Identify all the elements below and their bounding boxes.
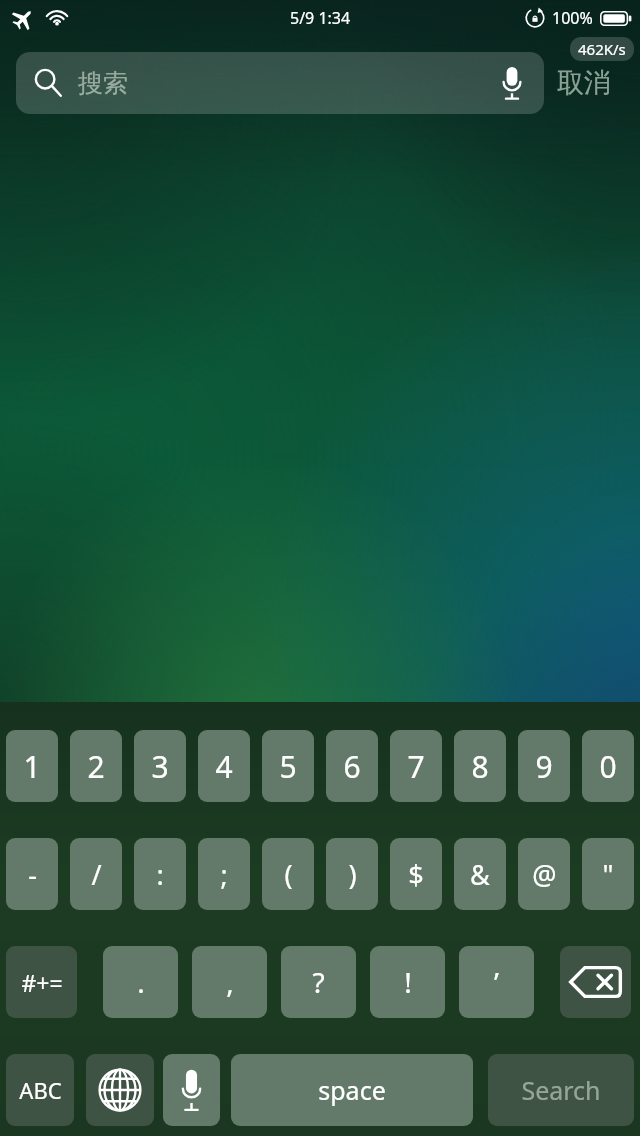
button[interactable]: space (231, 1054, 473, 1126)
staticText: 1 (23, 746, 41, 787)
staticText: ( (284, 856, 293, 893)
staticText: ! (404, 963, 412, 1001)
button[interactable]: 5 (262, 730, 314, 802)
staticText: : (156, 856, 164, 893)
button[interactable]: Voice search (490, 61, 534, 105)
staticText: @ (532, 856, 557, 893)
staticText: 9 (535, 746, 553, 787)
button[interactable]: ABC (6, 1054, 74, 1126)
staticText: ) (348, 856, 357, 893)
button[interactable]: ’ (459, 946, 534, 1018)
button[interactable]: ? (281, 946, 356, 1018)
staticText: " (602, 856, 614, 893)
button[interactable]: : (134, 838, 186, 910)
staticText: 8 (471, 746, 489, 787)
staticText: ’ (494, 963, 499, 1001)
staticText: ABC (19, 1075, 62, 1105)
button[interactable]: 1 (6, 730, 58, 802)
staticText: 5/9 1:34 (290, 7, 351, 29)
button[interactable]: , (192, 946, 267, 1018)
staticText: 取消 (557, 66, 611, 100)
staticText: 7 (407, 746, 425, 787)
button[interactable]: " (582, 838, 634, 910)
staticText: ; (220, 856, 228, 893)
button[interactable]: 搜索 (16, 52, 544, 114)
staticText: 0 (599, 746, 617, 787)
button[interactable]: $ (390, 838, 442, 910)
button[interactable]: 4 (198, 730, 250, 802)
staticText: space (318, 1073, 386, 1107)
staticText: ? (312, 963, 325, 1001)
staticText: $ (408, 856, 424, 893)
button[interactable]: - (6, 838, 58, 910)
staticText: Search (521, 1073, 601, 1107)
staticText: 100% (552, 7, 593, 29)
button[interactable]: ) (326, 838, 378, 910)
button[interactable]: Search (488, 1054, 634, 1126)
button[interactable]: ( (262, 838, 314, 910)
button[interactable]: 2 (70, 730, 122, 802)
staticText: & (470, 856, 490, 893)
staticText: 搜索 (78, 68, 128, 99)
staticText: 462K/s (578, 39, 626, 59)
staticText: , (226, 963, 234, 1001)
staticText: 4 (215, 746, 233, 787)
staticText: . (137, 963, 145, 1001)
staticText: / (91, 856, 102, 893)
button[interactable]: Delete (560, 946, 631, 1018)
staticText: 6 (343, 746, 361, 787)
button[interactable]: 0 (582, 730, 634, 802)
staticText: - (28, 856, 37, 893)
staticText: 5 (279, 746, 297, 787)
button[interactable]: . (103, 946, 178, 1018)
staticText: #+= (21, 967, 63, 998)
button[interactable]: 9 (518, 730, 570, 802)
button[interactable]: Switch keyboard (86, 1054, 154, 1126)
button[interactable]: ; (198, 838, 250, 910)
button[interactable]: 8 (454, 730, 506, 802)
button[interactable]: 6 (326, 730, 378, 802)
staticText: 2 (87, 746, 105, 787)
button[interactable]: #+= (6, 946, 77, 1018)
button[interactable]: 取消 (530, 52, 638, 114)
button[interactable]: / (70, 838, 122, 910)
staticText: 3 (151, 746, 169, 787)
button[interactable]: & (454, 838, 506, 910)
button[interactable]: @ (518, 838, 570, 910)
button[interactable]: 3 (134, 730, 186, 802)
button[interactable]: 7 (390, 730, 442, 802)
button[interactable]: Dictation (163, 1054, 220, 1126)
button[interactable]: ! (370, 946, 445, 1018)
